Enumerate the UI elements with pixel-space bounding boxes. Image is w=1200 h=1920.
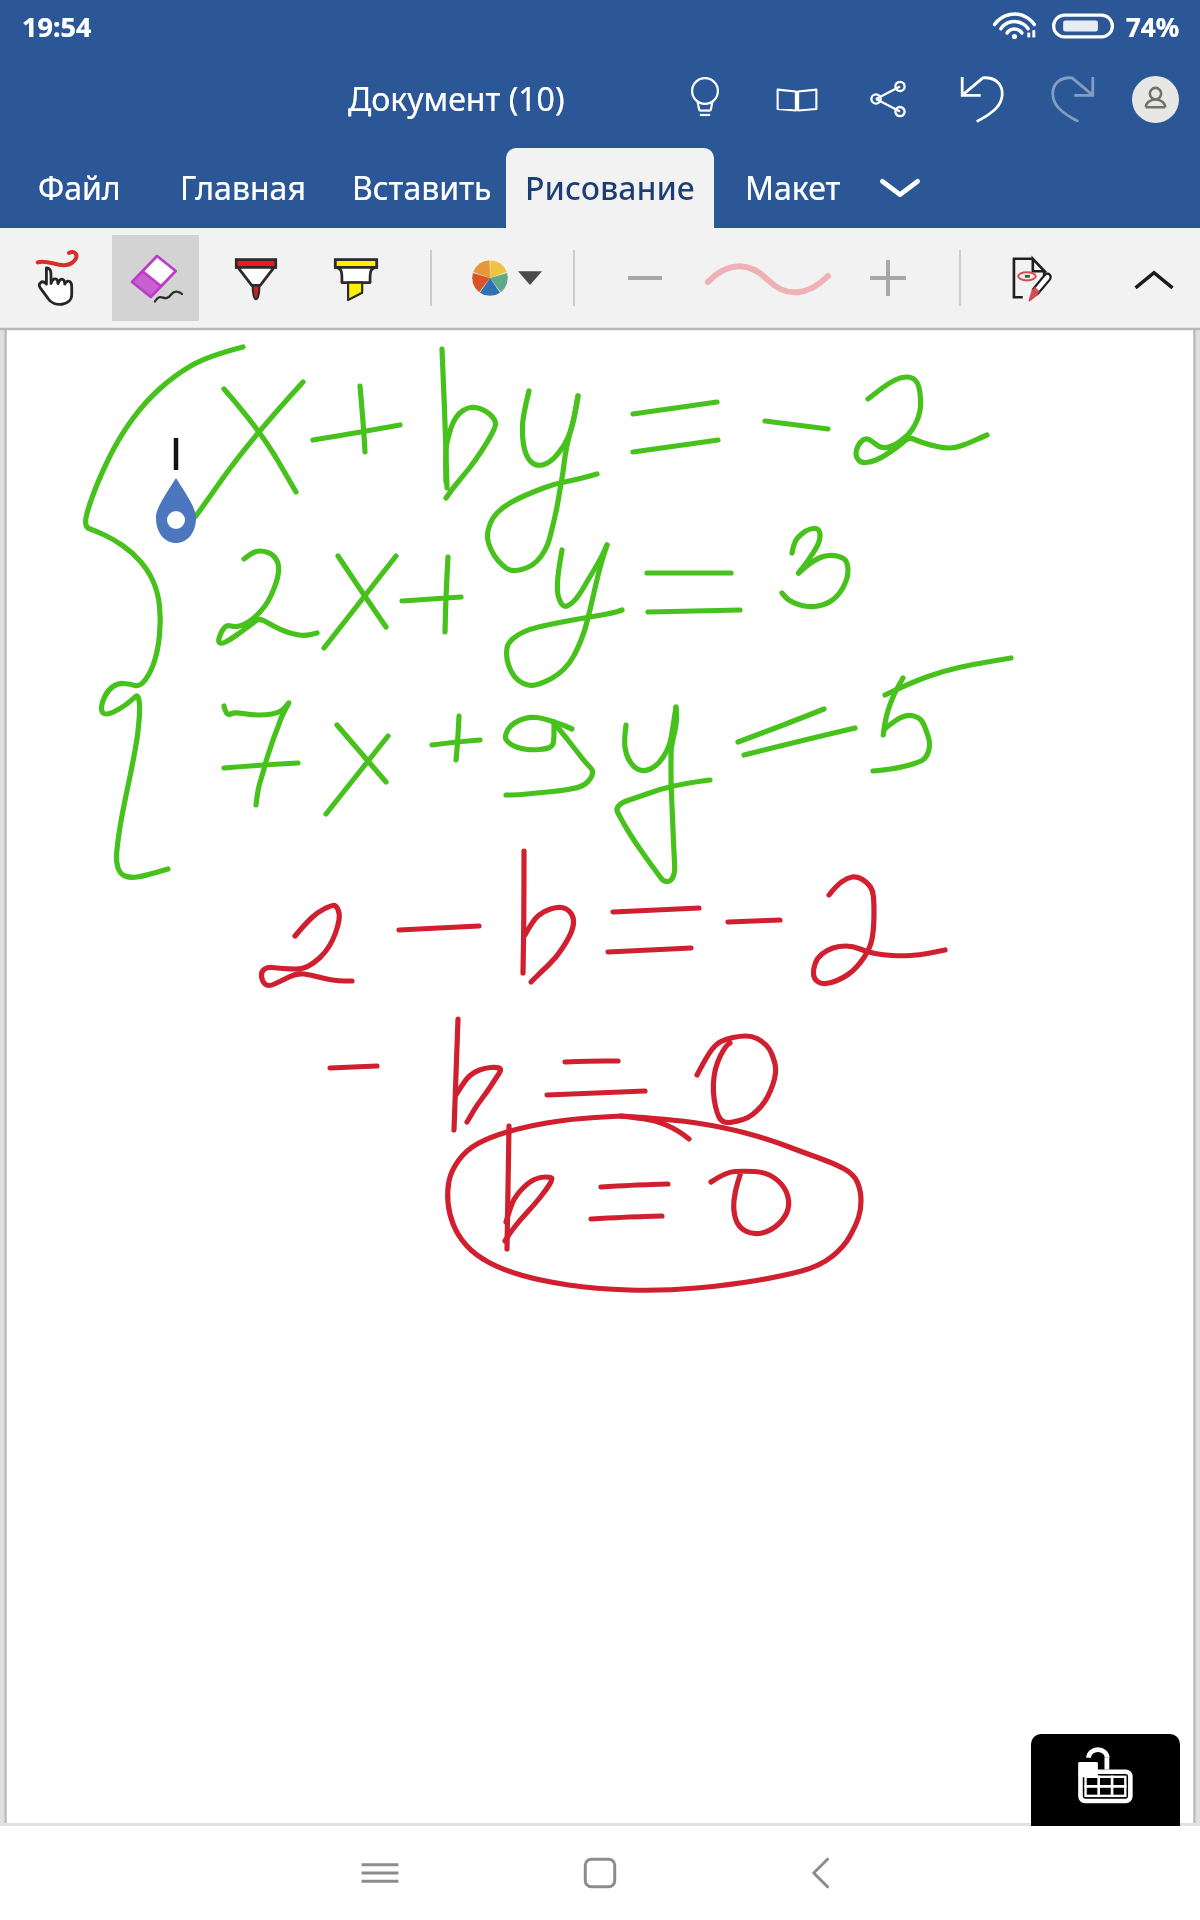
- button[interactable]: Collapse ribbon: [1108, 232, 1200, 328]
- button[interactable]: Account: [1109, 52, 1200, 146]
- staticText: 19:54: [22, 8, 92, 45]
- staticText: Макет: [745, 166, 841, 210]
- button[interactable]: Eraser: [112, 235, 199, 321]
- button[interactable]: Рисование: [506, 148, 714, 228]
- button[interactable]: Ideas: [659, 52, 751, 146]
- button[interactable]: More tabs: [862, 148, 938, 228]
- staticText: 74%: [1126, 9, 1180, 44]
- staticText: Главная: [180, 166, 306, 210]
- button[interactable]: Recent apps: [336, 1826, 424, 1920]
- button[interactable]: Undo: [936, 52, 1028, 146]
- button[interactable]: Pen: [211, 233, 301, 323]
- button[interactable]: Redo: [1027, 52, 1119, 146]
- staticText: Файл: [38, 166, 121, 210]
- button[interactable]: Share: [842, 52, 934, 146]
- button[interactable]: Файл: [38, 148, 121, 228]
- button[interactable]: Read mode: [751, 52, 843, 146]
- button[interactable]: Ink colour: [456, 228, 566, 328]
- button[interactable]: Главная: [180, 148, 306, 228]
- button[interactable]: Макет: [745, 148, 841, 228]
- staticText: Вставить: [352, 166, 492, 210]
- button[interactable]: Home: [556, 1826, 644, 1920]
- button[interactable]: Show keyboard: [1031, 1734, 1180, 1826]
- button[interactable]: Вставить: [352, 148, 492, 228]
- button[interactable]: Ink to text: [990, 228, 1074, 328]
- button[interactable]: Back: [778, 1826, 866, 1920]
- button[interactable]: Draw with touch: [12, 233, 102, 323]
- button[interactable]: Highlighter: [311, 233, 401, 323]
- staticText: Рисование: [525, 166, 695, 210]
- staticText: Документ (10): [348, 77, 565, 121]
